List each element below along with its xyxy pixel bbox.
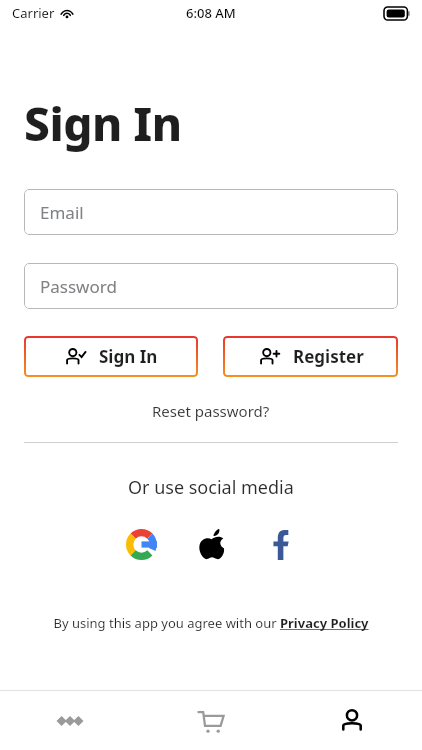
button[interactable]: Sign In (24, 336, 198, 377)
staticText: By using this app you agree with our Pri… (53, 614, 369, 632)
button[interactable]: Reset password? (0, 401, 422, 421)
staticText: Or use social media (128, 475, 294, 500)
button[interactable]: Register (223, 336, 398, 377)
staticText: Email (40, 201, 84, 224)
button[interactable]: Cart (140, 691, 281, 750)
button[interactable]: Sign in with Facebook (259, 522, 303, 566)
button[interactable]: Account (281, 691, 422, 750)
button[interactable]: Home (0, 691, 140, 750)
button[interactable]: Password (24, 263, 398, 309)
staticText: Sign In (99, 345, 158, 368)
staticText: Reset password? (152, 401, 270, 421)
staticText: Sign In (24, 92, 182, 155)
staticText: Password (40, 275, 117, 298)
staticText: 6:08 AM (186, 4, 236, 22)
button[interactable]: Email (24, 189, 398, 235)
button[interactable]: Sign in with Apple (189, 522, 233, 566)
staticText: Register (293, 345, 364, 368)
button[interactable]: Sign in with Google (119, 522, 163, 566)
button[interactable]: By using this app you agree with our Pri… (20, 614, 402, 632)
staticText: Carrier (12, 4, 55, 22)
